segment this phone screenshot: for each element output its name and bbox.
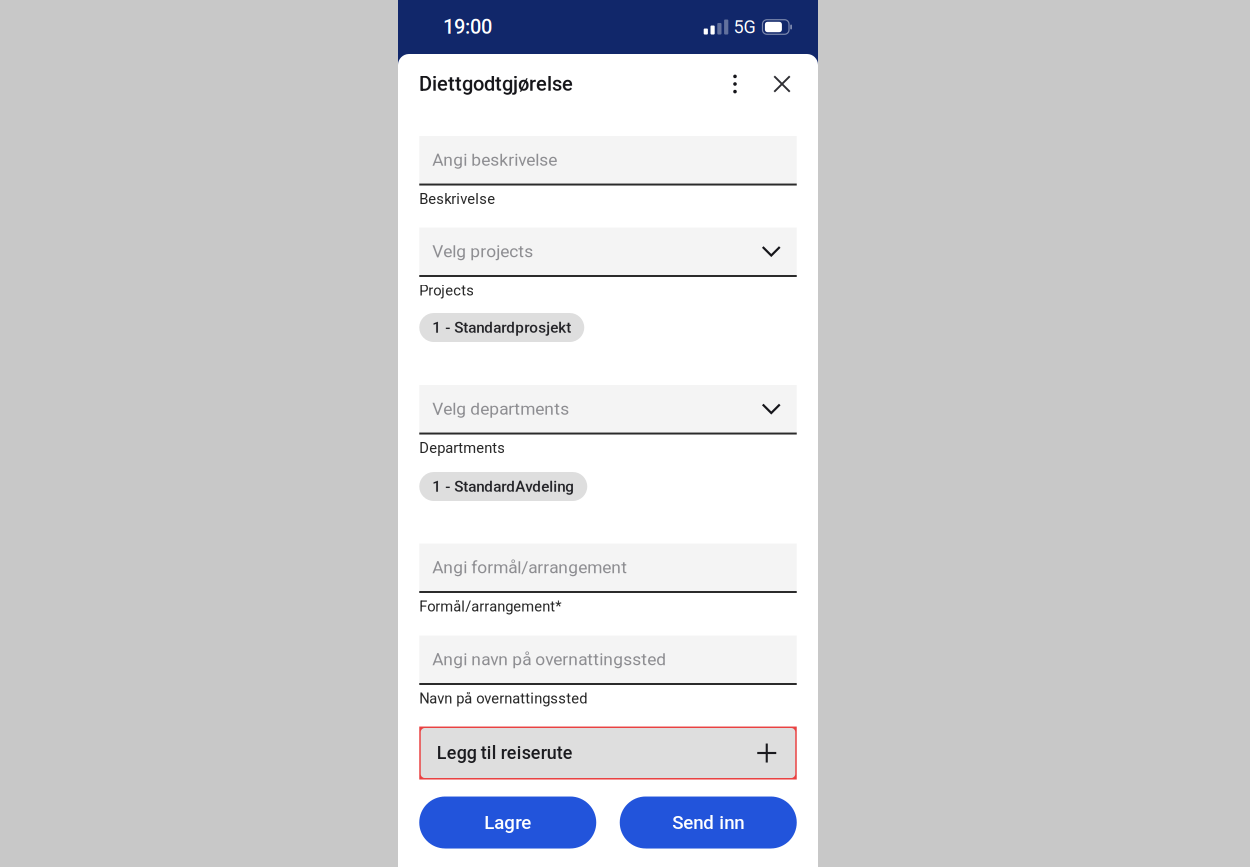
- button[interactable]: Lagre: [419, 796, 596, 848]
- staticText: 1 - Standardprosjekt: [432, 319, 571, 336]
- staticText: Navn på overnattingssted: [419, 690, 587, 707]
- staticText: Angi beskrivelse: [432, 150, 557, 170]
- staticText: Send inn: [672, 812, 744, 833]
- staticText: Angi navn på overnattingssted: [432, 649, 666, 669]
- button[interactable]: Angi formål/arrangement: [419, 543, 797, 593]
- button[interactable]: Angi beskrivelse: [419, 136, 797, 185]
- staticText: Diettgodtgjørelse: [419, 72, 573, 96]
- staticText: Legg til reiserute: [437, 742, 573, 763]
- button[interactable]: Velg projects: [419, 227, 797, 277]
- staticText: Lagre: [484, 812, 531, 833]
- button[interactable]: More options: [724, 69, 746, 99]
- button[interactable]: Legg til reiserute: [419, 726, 797, 779]
- staticText: 19:00: [443, 15, 492, 39]
- staticText: Formål/arrangement*: [419, 598, 561, 615]
- button[interactable]: 1 - Standardprosjekt: [419, 313, 584, 342]
- staticText: Velg projects: [432, 241, 533, 261]
- staticText: 1 - StandardAvdeling: [432, 478, 574, 495]
- staticText: Angi formål/arrangement: [432, 557, 627, 577]
- staticText: Velg departments: [432, 399, 569, 419]
- button[interactable]: Send inn: [620, 796, 797, 848]
- button[interactable]: Close: [767, 69, 797, 99]
- button[interactable]: Angi navn på overnattingssted: [419, 635, 797, 685]
- staticText: Beskrivelse: [419, 190, 495, 208]
- button[interactable]: 1 - StandardAvdeling: [419, 472, 587, 501]
- staticText: Projects: [419, 282, 474, 299]
- staticText: 5G: [733, 16, 755, 38]
- button[interactable]: Velg departments: [419, 385, 797, 434]
- staticText: Departments: [419, 439, 505, 457]
